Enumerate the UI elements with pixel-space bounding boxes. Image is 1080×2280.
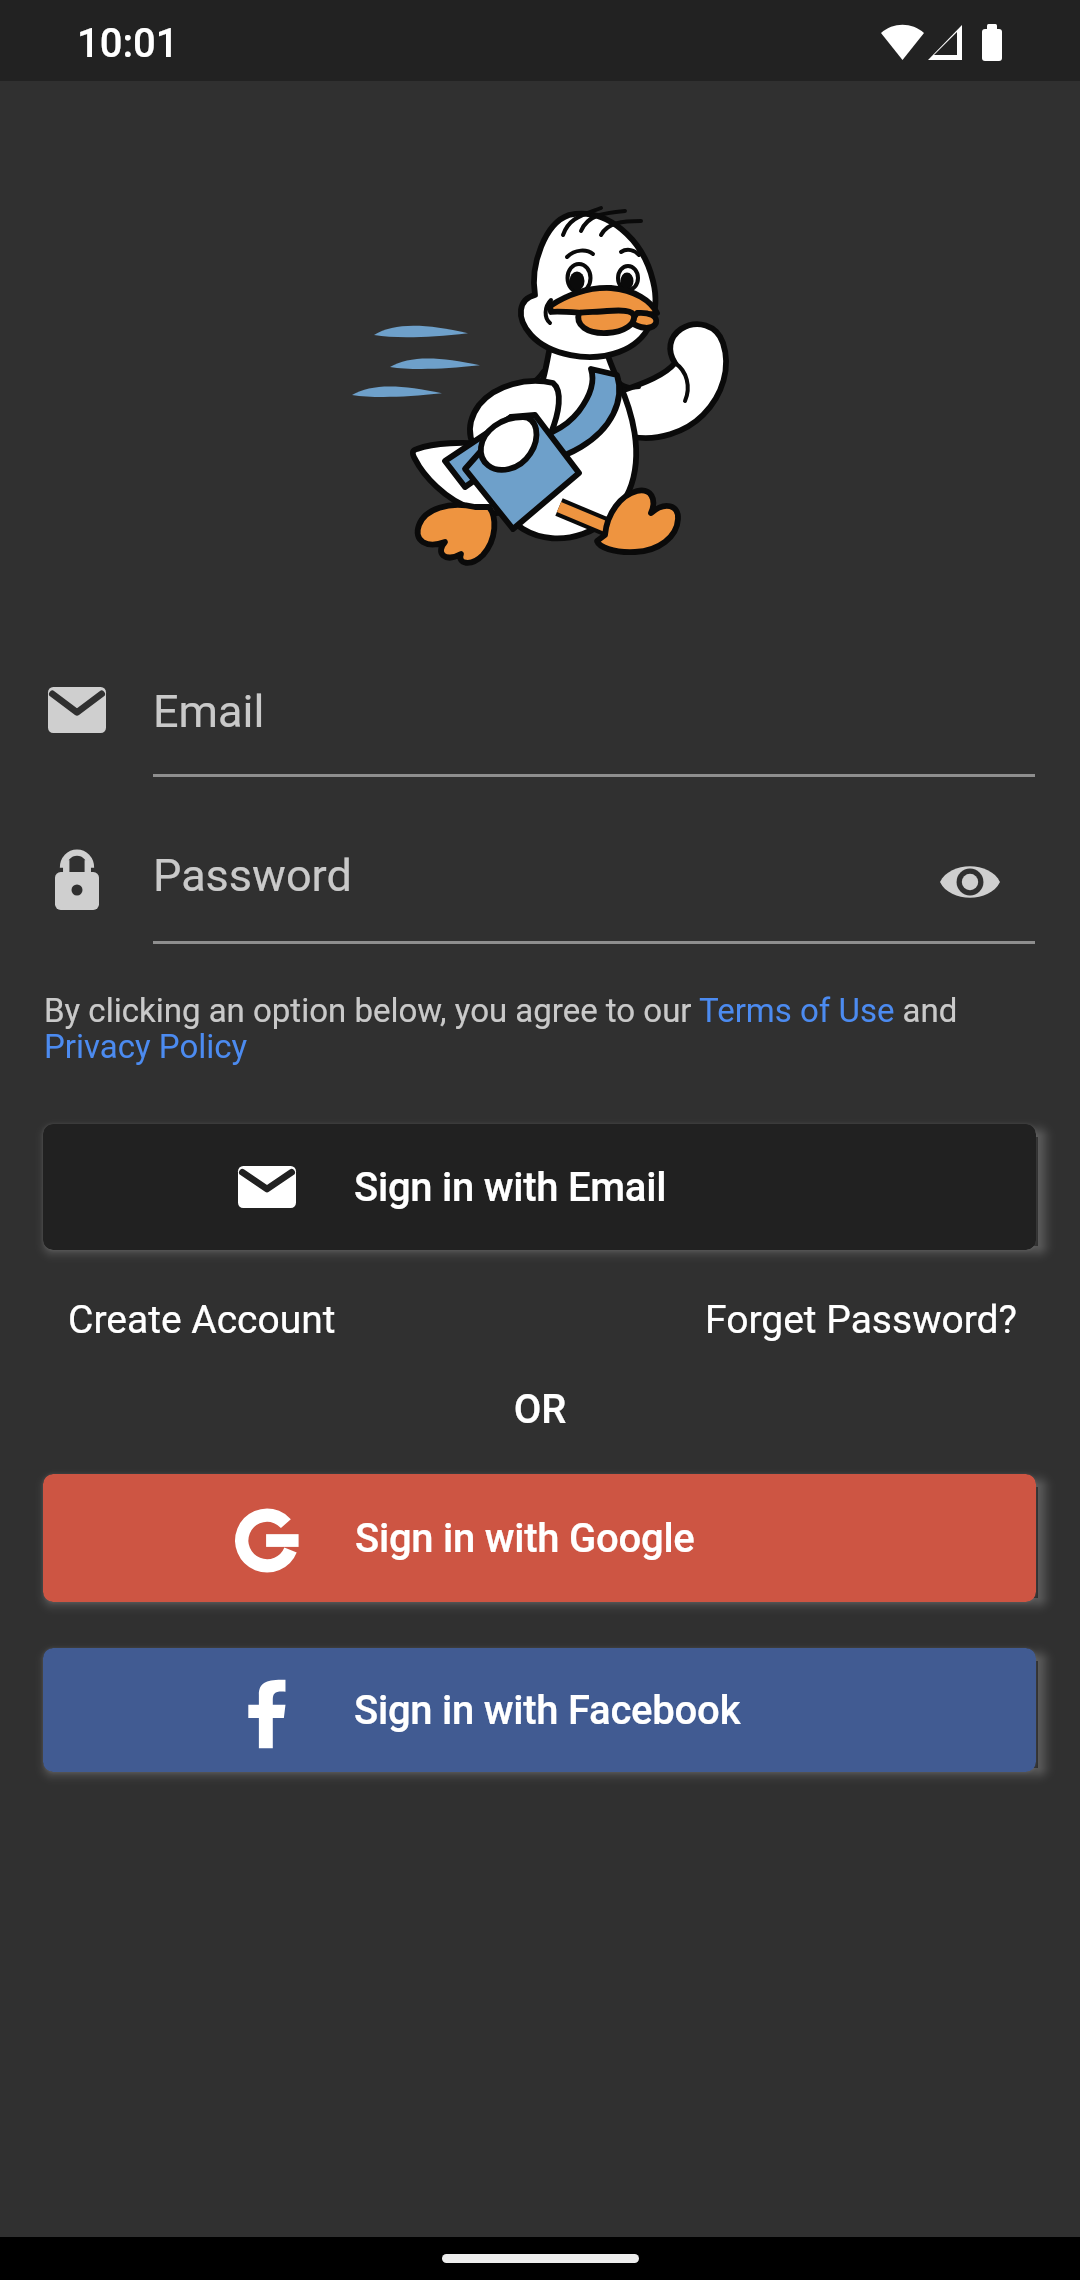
button[interactable]: Sign in with Google [43, 1474, 1036, 1602]
button[interactable]: Create Account [68, 1297, 336, 1343]
button[interactable]: Show password [925, 837, 1015, 927]
staticText: Sign in with Email [354, 1164, 667, 1211]
staticText: OR [0, 1386, 1080, 1433]
button[interactable]: Password [153, 824, 1035, 944]
staticText: Sign in with Google [355, 1515, 695, 1562]
button[interactable]: Sign in with Facebook [43, 1648, 1036, 1772]
button[interactable]: Email [153, 660, 1035, 778]
staticText: Email [153, 685, 265, 738]
staticText: Sign in with Facebook [354, 1687, 741, 1734]
button[interactable]: Sign in with Email [43, 1124, 1036, 1250]
button[interactable]: Forget Password? [705, 1297, 1017, 1343]
staticText: 10:01 [77, 20, 179, 67]
staticText: Password [153, 849, 352, 902]
staticText: By clicking an option below, you agree t… [44, 991, 1039, 1066]
